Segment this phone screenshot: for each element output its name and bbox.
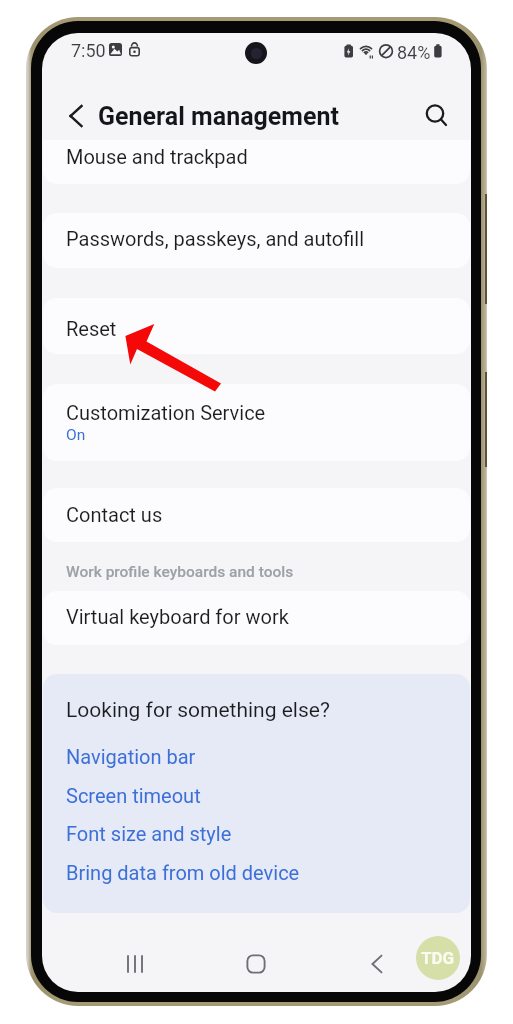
staticText: 7:50: [71, 40, 106, 61]
staticText: Navigation bar: [66, 745, 196, 768]
button[interactable]: TDG watermark: [416, 936, 460, 980]
button[interactable]: Back: [58, 95, 100, 137]
staticText: 84%: [397, 42, 431, 63]
staticText: Bring data from old device: [66, 861, 300, 884]
staticText: Customization Service: [66, 401, 266, 424]
button[interactable]: Screen timeout: [66, 781, 201, 809]
staticText: General management: [98, 102, 339, 131]
button[interactable]: Font size and style: [66, 819, 232, 847]
staticText: Virtual keyboard for work: [66, 605, 289, 628]
button[interactable]: Navigation bar: [66, 742, 196, 770]
button[interactable]: [43, 298, 470, 354]
button[interactable]: [43, 591, 470, 645]
button[interactable]: [43, 384, 470, 461]
button[interactable]: Back: [355, 942, 399, 986]
staticText: Work profile keyboards and tools: [66, 563, 294, 581]
button[interactable]: [43, 488, 470, 542]
staticText: Font size and style: [66, 822, 232, 845]
staticText: Mouse and trackpad: [66, 145, 248, 168]
button[interactable]: [43, 213, 470, 268]
button[interactable]: [43, 140, 470, 184]
staticText: TDG: [421, 948, 455, 968]
staticText: Contact us: [66, 503, 163, 526]
staticText: Looking for something else?: [66, 698, 330, 723]
button[interactable]: Recent apps: [113, 942, 157, 986]
button[interactable]: Home: [234, 942, 278, 986]
staticText: Reset: [66, 317, 117, 340]
staticText: On: [66, 426, 86, 444]
button[interactable]: Bring data from old device: [66, 858, 300, 886]
staticText: Screen timeout: [66, 784, 201, 807]
button[interactable]: Search: [414, 94, 456, 136]
staticText: Passwords, passkeys, and autofill: [66, 227, 365, 250]
